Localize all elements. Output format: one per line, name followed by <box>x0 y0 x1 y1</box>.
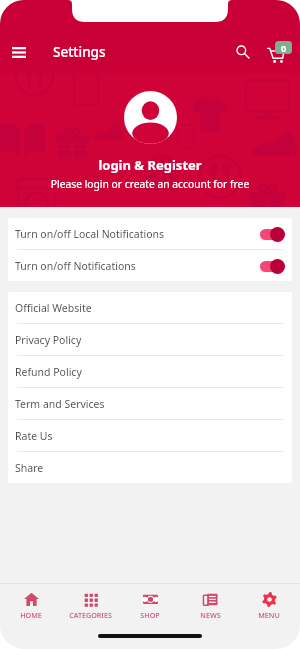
staticText: NEWS <box>200 610 221 620</box>
staticText: Privacy Policy <box>15 333 82 347</box>
staticText: SHOP <box>140 610 160 620</box>
button[interactable]: SHOP <box>121 584 179 624</box>
staticText: Term and Services <box>15 397 105 411</box>
button[interactable]: Menu <box>0 31 38 73</box>
button[interactable]: Rate Us <box>8 420 292 451</box>
button[interactable]: Cart <box>263 31 295 73</box>
staticText: Rate Us <box>15 429 53 443</box>
button[interactable]: Turn on/off Notifications <box>8 250 292 281</box>
staticText: CATEGORIES <box>69 610 112 620</box>
button[interactable]: Term and Services <box>8 388 292 419</box>
button[interactable]: Privacy Policy <box>8 324 292 355</box>
button[interactable]: Share <box>8 452 292 483</box>
staticText: Settings <box>53 43 106 61</box>
staticText: Official Website <box>15 301 92 315</box>
staticText: Share <box>15 461 44 475</box>
button[interactable]: Official Website <box>8 292 292 323</box>
button[interactable]: Refund Policy <box>8 356 292 387</box>
staticText: MENU <box>258 610 280 620</box>
button[interactable]: Turn on/off Local Notifications <box>8 218 292 249</box>
staticText: Please login or create an account for fr… <box>0 177 300 191</box>
staticText: Turn on/off Notifications <box>15 259 136 273</box>
staticText: HOME <box>20 610 42 620</box>
button[interactable]: CATEGORIES <box>61 584 119 624</box>
staticText: login & Register <box>0 156 300 174</box>
staticText: Turn on/off Local Notifications <box>15 227 165 241</box>
button[interactable]: NEWS <box>181 584 239 624</box>
button[interactable]: MENU <box>240 584 298 624</box>
button[interactable]: HOME <box>2 584 60 624</box>
staticText: Refund Policy <box>15 365 82 379</box>
button[interactable]: Search <box>228 31 258 73</box>
staticText: 0 <box>281 42 287 54</box>
